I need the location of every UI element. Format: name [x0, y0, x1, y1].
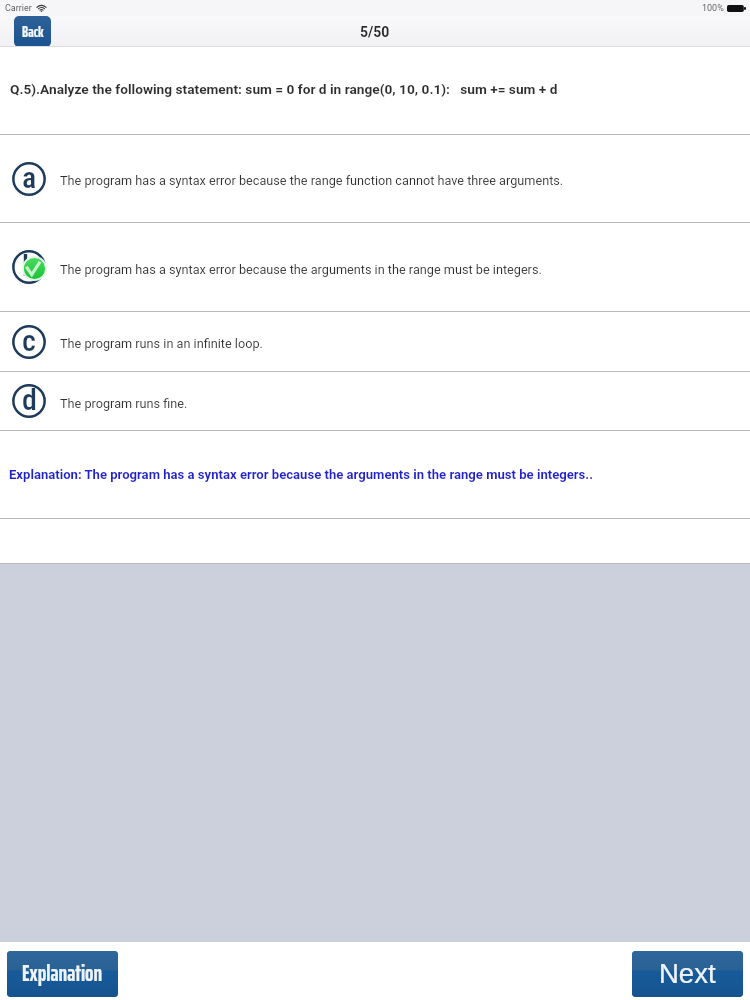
staticText: c	[22, 323, 36, 357]
button[interactable]: Explanation	[7, 951, 118, 997]
button[interactable]: d	[0, 372, 750, 430]
staticText: Explanation: The program has a syntax er…	[9, 467, 593, 482]
staticText: 5/50	[360, 24, 390, 40]
staticText: a	[22, 160, 37, 194]
staticText: Explanation	[22, 956, 103, 991]
button[interactable]: c	[0, 312, 750, 371]
staticText: Back	[22, 20, 44, 44]
staticText: Q.5).Analyze the following statement: su…	[10, 81, 558, 97]
staticText: Carrier	[5, 3, 32, 14]
staticText: The program runs in an infinite loop.	[60, 336, 263, 351]
button[interactable]: b	[0, 223, 750, 311]
button[interactable]: a	[0, 135, 750, 222]
button[interactable]: Next	[632, 951, 743, 997]
staticText: The program has a syntax error because t…	[60, 262, 542, 277]
staticText: b	[22, 248, 37, 282]
staticText: The program runs fine.	[60, 396, 188, 411]
staticText: d	[22, 382, 37, 416]
button[interactable]: Back	[14, 16, 51, 47]
staticText: 100%	[702, 3, 724, 14]
staticText: The program has a syntax error because t…	[60, 173, 564, 188]
staticText: Next	[659, 958, 716, 989]
